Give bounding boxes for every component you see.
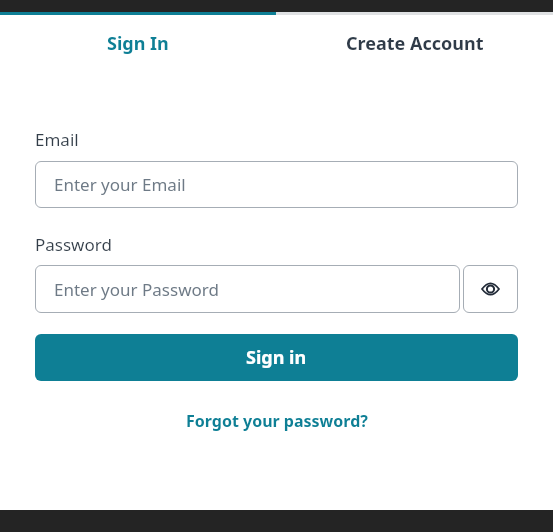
button[interactable]: Sign In (0, 15, 276, 71)
staticText: Create Account (346, 31, 484, 56)
button[interactable]: Enter your Password (35, 265, 460, 313)
staticText: Forgot your password? (186, 410, 368, 432)
staticText: Sign in (246, 345, 307, 370)
staticText: Enter your Password (54, 278, 219, 301)
staticText: Enter your Email (54, 173, 186, 196)
button[interactable]: Create Account (276, 15, 553, 71)
staticText: Sign In (107, 31, 169, 56)
staticText: Password (35, 233, 112, 252)
button[interactable]: Forgot your password? (186, 410, 368, 432)
button[interactable] (463, 265, 518, 313)
button[interactable]: Enter your Email (35, 161, 518, 208)
button[interactable]: Sign in (35, 334, 518, 381)
staticText: Email (35, 128, 79, 147)
